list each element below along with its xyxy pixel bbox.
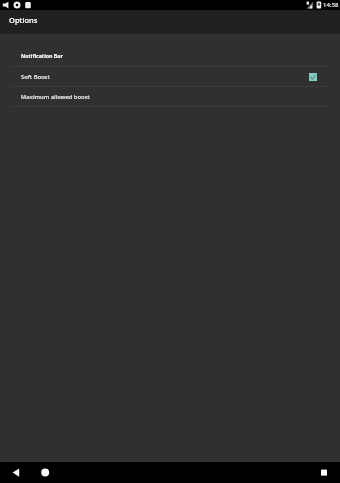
staticText: Notification Bar <box>21 52 63 59</box>
staticText: Options <box>9 15 38 25</box>
button[interactable]: Notification Bar <box>0 34 340 67</box>
button[interactable]: Recent apps <box>312 462 340 483</box>
staticText: Maximum allowed boost <box>21 93 90 101</box>
staticText: 14:58 <box>323 1 339 9</box>
button[interactable]: Back <box>0 462 29 483</box>
button[interactable]: Home <box>29 462 61 483</box>
button[interactable]: Soft Boost <box>0 67 340 87</box>
staticText: Soft Boost <box>21 73 50 81</box>
button[interactable]: Maximum allowed boost <box>0 87 340 107</box>
